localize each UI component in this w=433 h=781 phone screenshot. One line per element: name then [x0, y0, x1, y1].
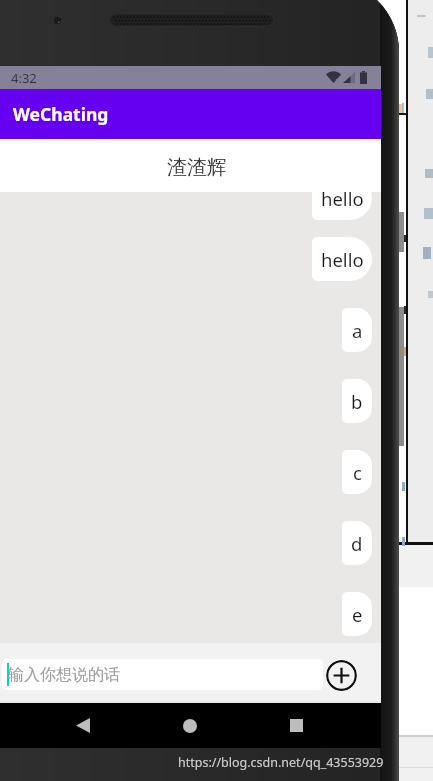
button[interactable]: Add attachment: [326, 660, 357, 691]
staticText: d: [351, 531, 363, 556]
button[interactable]: Home: [167, 703, 212, 748]
button[interactable]: 输入你想说的话: [2, 659, 323, 690]
staticText: 输入你想说的话: [8, 665, 120, 685]
staticText: c: [353, 460, 362, 485]
button[interactable]: c: [342, 450, 372, 494]
button[interactable]: a: [342, 308, 372, 352]
button[interactable]: Recent apps: [274, 703, 319, 748]
staticText: 渣渣辉: [167, 155, 227, 180]
staticText: b: [351, 389, 363, 414]
staticText: hello: [321, 186, 364, 211]
button[interactable]: d: [342, 521, 372, 565]
staticText: 4:32: [11, 69, 37, 87]
staticText: e: [352, 602, 363, 627]
staticText: a: [352, 318, 363, 343]
button[interactable]: hello: [312, 176, 372, 220]
button[interactable]: Back: [60, 703, 105, 748]
button[interactable]: e: [342, 592, 372, 636]
staticText: https://blog.csdn.net/qq_43553929: [178, 754, 384, 771]
button[interactable]: b: [342, 379, 372, 423]
staticText: hello: [321, 247, 364, 272]
staticText: WeChating: [13, 102, 109, 126]
button[interactable]: hello: [312, 237, 372, 281]
